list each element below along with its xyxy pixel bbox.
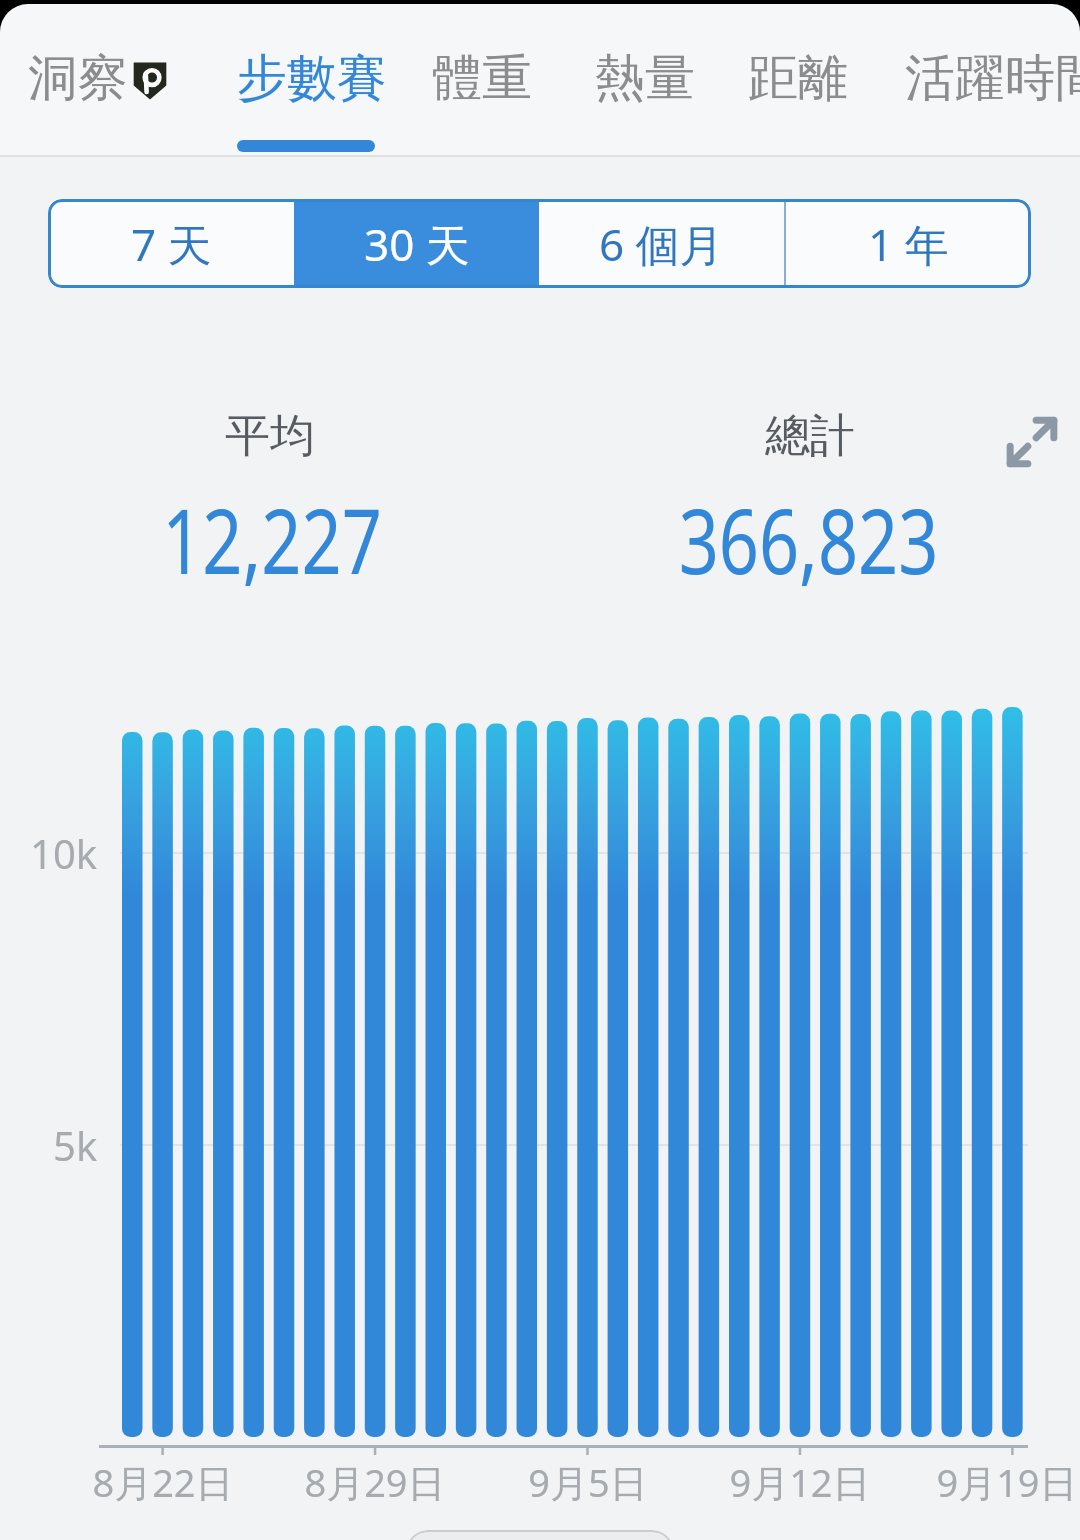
staticText: 活躍時間	[905, 47, 1080, 110]
button[interactable]: 7 天	[48, 199, 294, 288]
button[interactable]: 活躍時間	[905, 40, 1080, 116]
staticText: 6 個月	[599, 214, 724, 274]
button[interactable]: 30 天	[294, 199, 539, 288]
button[interactable]: 熱量	[595, 40, 695, 116]
staticText: 平均	[225, 408, 315, 465]
staticText: 步數賽	[237, 47, 387, 110]
staticText: 8月22日	[92, 1456, 234, 1508]
staticText: 體重	[432, 47, 532, 110]
button[interactable]: 步數賽	[237, 40, 387, 116]
staticText: 5k	[53, 1118, 98, 1172]
staticText: 1 年	[868, 214, 949, 274]
staticText: 洞察	[28, 47, 128, 110]
staticText: 8月29日	[304, 1456, 446, 1508]
button[interactable]: 洞察	[28, 40, 128, 116]
staticText: 9月19日	[936, 1456, 1078, 1508]
staticText: 總計	[765, 408, 855, 465]
staticText: 12,227	[162, 478, 382, 601]
staticText: 熱量	[595, 47, 695, 110]
staticText: 366,823	[679, 478, 938, 601]
staticText: 7 天	[131, 214, 212, 274]
staticText: 10k	[30, 826, 98, 880]
staticText: 距離	[748, 47, 848, 110]
button[interactable]: 距離	[748, 40, 848, 116]
staticText: 30 天	[364, 214, 470, 274]
button[interactable]: 6 個月	[539, 199, 784, 288]
button[interactable]: 1 年	[786, 199, 1031, 288]
button[interactable]	[1006, 416, 1058, 468]
staticText: 9月12日	[729, 1456, 871, 1508]
button[interactable]: 體重	[432, 40, 532, 116]
staticText: 9月5日	[528, 1456, 648, 1508]
